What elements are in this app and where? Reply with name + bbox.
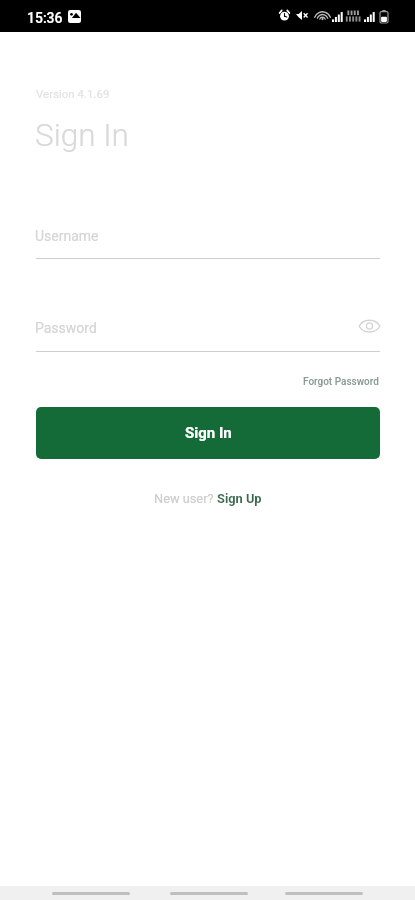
staticText: Sign Up xyxy=(217,491,262,506)
staticText: Version 4.1.69 xyxy=(36,87,110,100)
staticText: Forgot Password xyxy=(303,376,379,388)
button[interactable]: Password xyxy=(36,310,380,352)
staticText: Sign In xyxy=(185,424,232,442)
staticText: Password xyxy=(35,320,97,336)
button[interactable]: Username xyxy=(36,218,380,259)
button[interactable]: Sign Up xyxy=(217,487,262,510)
staticText: Username xyxy=(35,228,99,244)
button[interactable]: Home xyxy=(161,886,257,900)
staticText: 15:36 xyxy=(27,10,63,26)
button[interactable]: Recents xyxy=(43,886,139,900)
staticText: Sign In xyxy=(35,117,129,154)
button[interactable]: Show password xyxy=(347,304,392,348)
button[interactable]: Back xyxy=(276,886,372,900)
button[interactable]: Forgot Password xyxy=(296,369,386,395)
staticText: New user? xyxy=(154,491,217,506)
button[interactable]: Sign In xyxy=(36,407,380,459)
